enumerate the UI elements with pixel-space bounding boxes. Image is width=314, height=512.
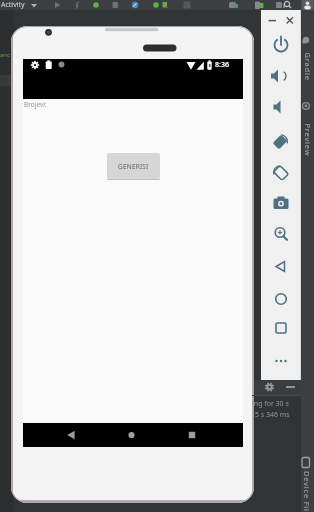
staticText: Preview xyxy=(302,123,312,156)
staticText: ing for 30 s xyxy=(252,399,289,409)
staticText: anc xyxy=(0,51,10,59)
button[interactable] xyxy=(265,221,297,247)
button[interactable]: GENERISI xyxy=(107,153,160,179)
button[interactable] xyxy=(265,128,297,154)
staticText: Brojevi: xyxy=(24,100,47,109)
staticText: Gradle xyxy=(302,52,312,81)
button[interactable] xyxy=(265,94,297,120)
button[interactable] xyxy=(179,423,227,447)
button[interactable] xyxy=(265,191,297,217)
button[interactable] xyxy=(119,423,167,447)
button[interactable] xyxy=(284,15,296,26)
button[interactable] xyxy=(265,315,297,341)
button[interactable] xyxy=(265,254,297,280)
staticText: Device File xyxy=(302,471,312,512)
staticText: Activity xyxy=(1,0,25,10)
button[interactable] xyxy=(265,63,297,89)
button[interactable] xyxy=(265,348,297,374)
button[interactable] xyxy=(265,15,277,26)
button[interactable] xyxy=(265,159,297,185)
staticText: GENERISI xyxy=(118,162,149,171)
button[interactable] xyxy=(265,286,297,312)
staticText: 5 s 346 ms xyxy=(255,410,290,420)
button[interactable] xyxy=(59,423,107,447)
staticText: 8:36 xyxy=(215,60,229,70)
button[interactable] xyxy=(265,32,297,58)
